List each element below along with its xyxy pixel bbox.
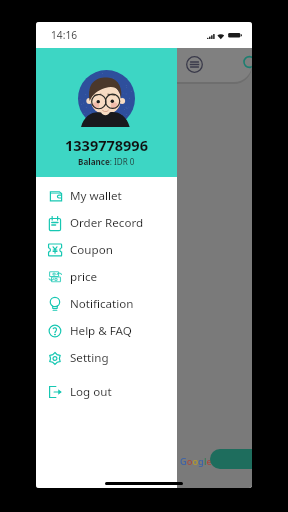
staticText: Help & FAQ (70, 323, 132, 339)
button[interactable]: Help & FAQ (36, 317, 177, 344)
staticText: Notification (70, 296, 134, 312)
button[interactable]: Setting (36, 344, 177, 371)
staticText: My wallet (70, 188, 122, 204)
staticText: price (70, 269, 98, 285)
staticText: Google (180, 455, 212, 468)
button[interactable]: Log out (36, 378, 177, 405)
button[interactable]: Order Record (36, 209, 177, 236)
button[interactable]: My wallet (36, 182, 177, 209)
staticText: 14:16 (51, 28, 78, 42)
button[interactable]: Open menu (186, 56, 203, 73)
staticText: Coupon (70, 242, 113, 258)
button[interactable]: Coupon (36, 236, 177, 263)
button[interactable]: Action (210, 449, 252, 469)
button[interactable]: price (36, 263, 177, 290)
button[interactable]: Notification (36, 290, 177, 317)
staticText: 1339778996 (65, 135, 148, 155)
staticText: Order Record (70, 215, 144, 231)
staticText: Log out (70, 384, 112, 400)
staticText: Setting (70, 350, 109, 366)
staticText: Balance: IDR 0 (78, 156, 135, 167)
